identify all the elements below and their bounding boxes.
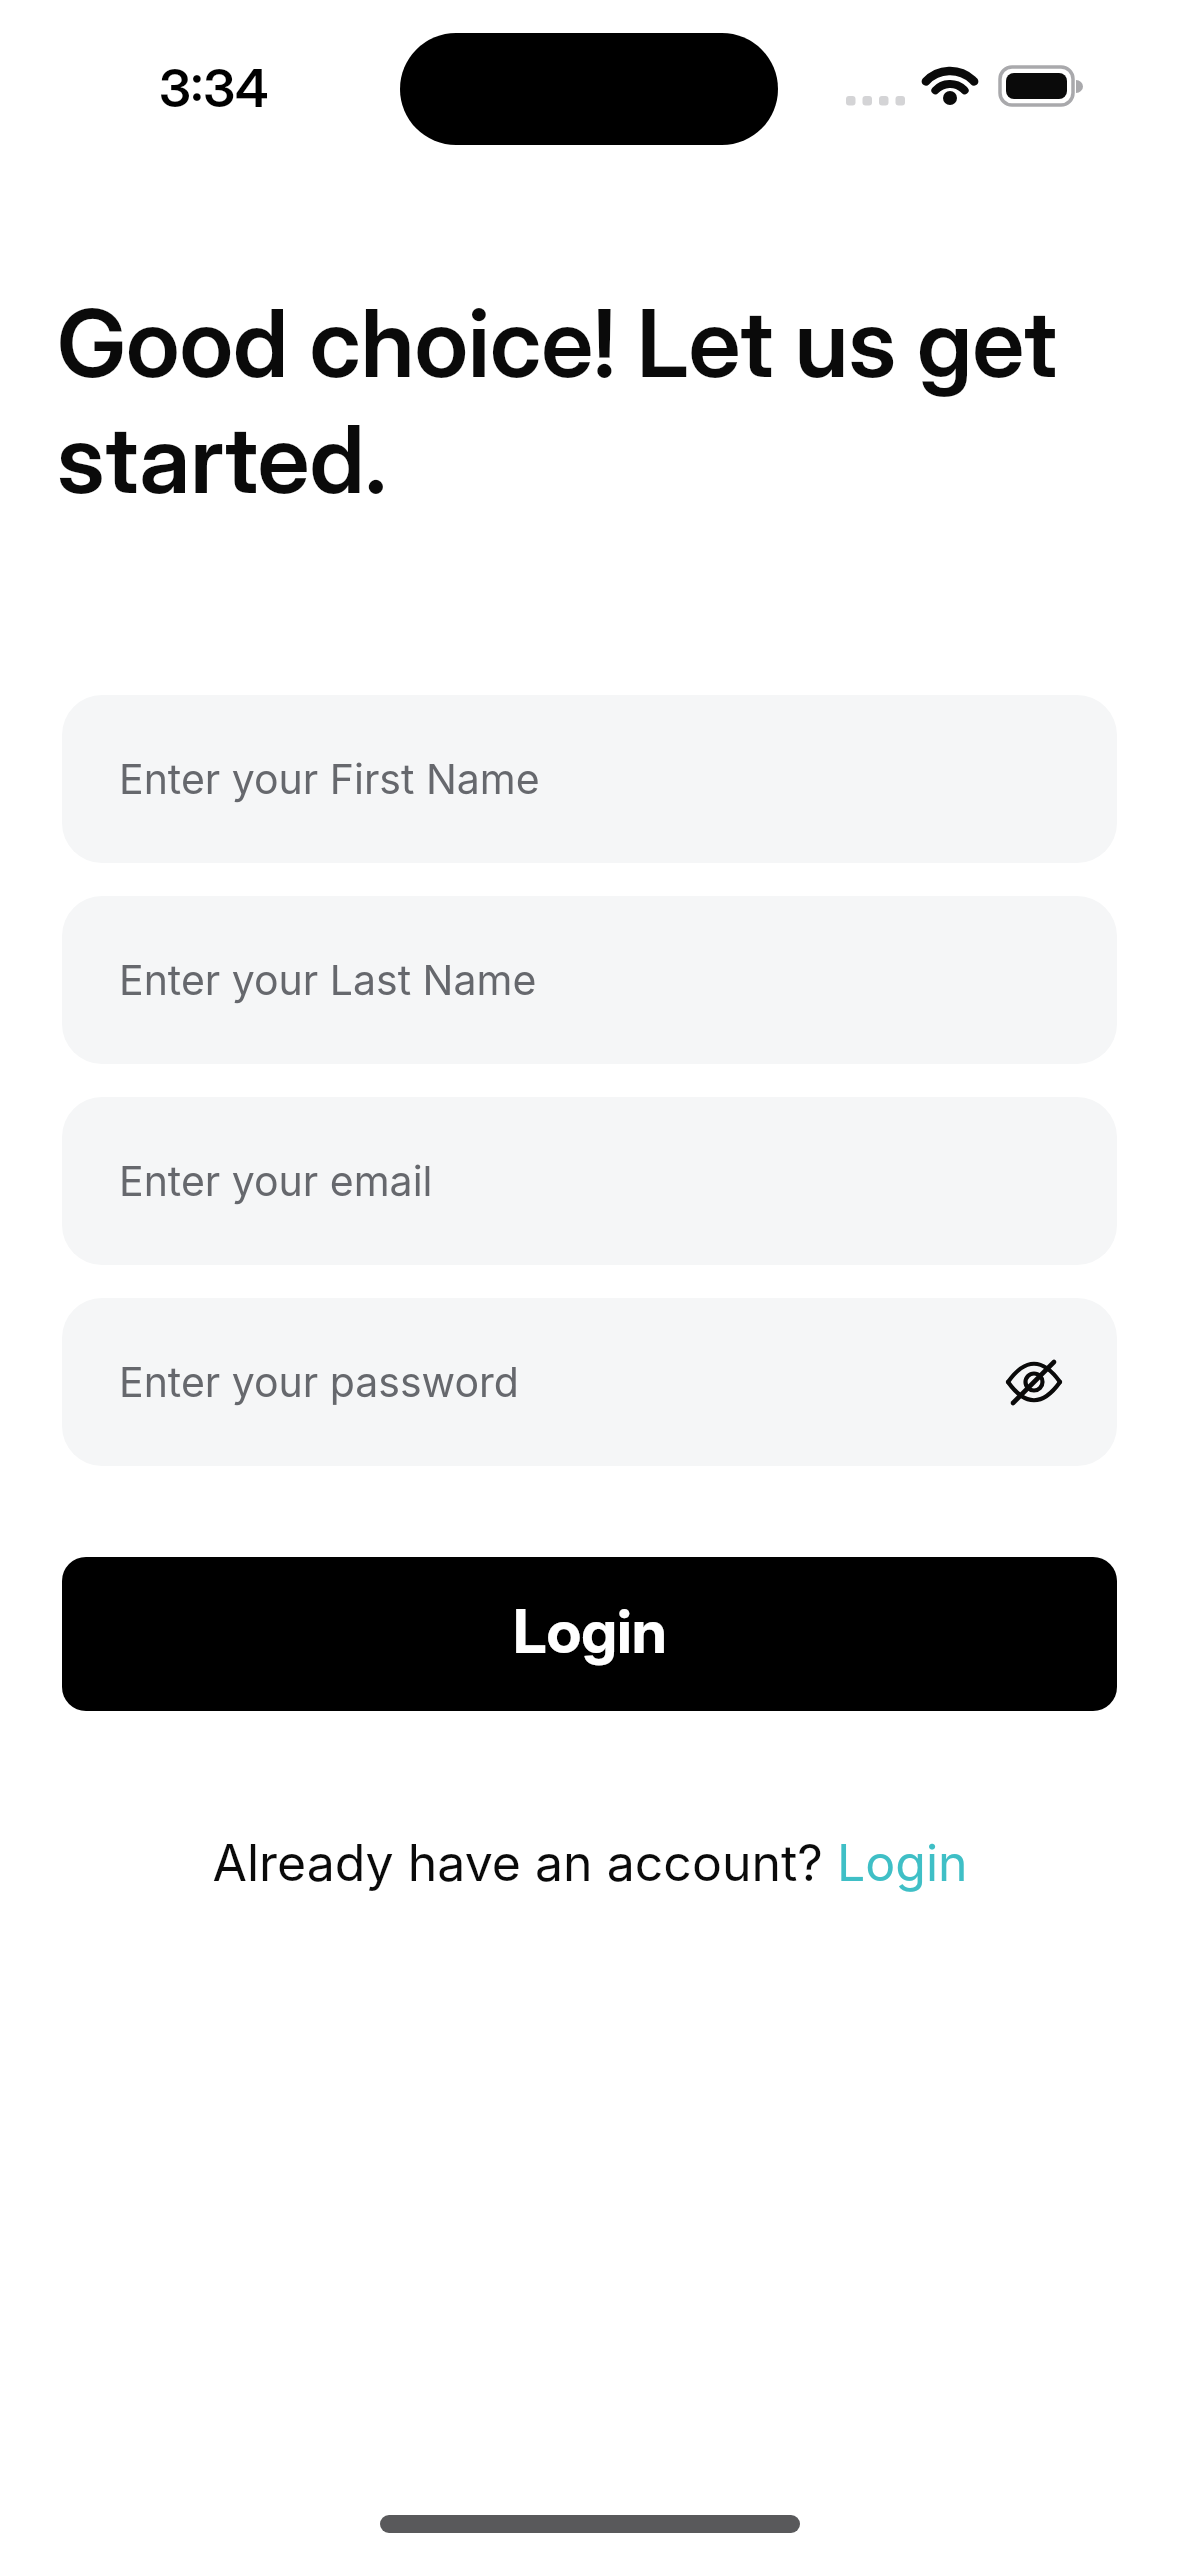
button[interactable]: Login [62, 1557, 1117, 1711]
staticText: 3:34 [159, 57, 269, 120]
button[interactable]: Enter your password [62, 1298, 1117, 1466]
staticText: Enter your password [119, 1357, 519, 1407]
staticText: Enter your Last Name [119, 955, 537, 1005]
staticText: Login [513, 1595, 667, 1668]
button[interactable]: Enter your First Name [62, 695, 1117, 863]
staticText: Enter your email [119, 1156, 433, 1206]
button[interactable]: Enter your Last Name [62, 896, 1117, 1064]
button[interactable]: Enter your email [62, 1097, 1117, 1265]
staticText: Good choice! Let us get started. [57, 286, 1058, 516]
staticText: Enter your First Name [119, 754, 540, 804]
button[interactable]: Already have an account? Login [212, 1833, 968, 1893]
